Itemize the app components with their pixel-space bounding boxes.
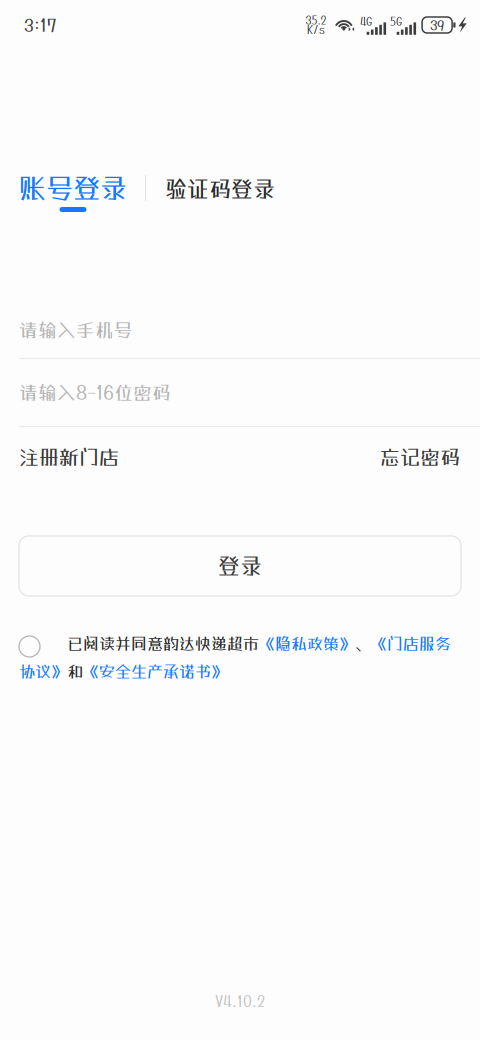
button[interactable]: 已阅读并同意韵达快递超市《隐私政策》、《门店服务协议》和《安全生产承诺书》: [19, 634, 460, 681]
staticText: 35.2: [306, 14, 327, 26]
button[interactable]: 登录: [19, 536, 461, 596]
staticText: 已阅读并同意韵达快递超市《隐私政策》、《门店服务协议》和《安全生产承诺书》: [19, 634, 451, 681]
staticText: 请输入手机号: [19, 319, 133, 341]
staticText: 5G: [390, 15, 402, 28]
staticText: 4G: [360, 15, 372, 28]
staticText: V4.10.2: [215, 993, 265, 1010]
button[interactable]: 验证码登录: [165, 175, 275, 212]
staticText: K/s: [307, 23, 325, 36]
staticText: 登录: [218, 553, 262, 579]
button[interactable]: 同意用户协议: [19, 636, 40, 657]
button[interactable]: 账号登录: [19, 173, 127, 212]
staticText: 账号登录: [19, 172, 127, 204]
staticText: 39: [430, 17, 444, 33]
staticText: 请输入8-16位密码: [19, 381, 171, 403]
staticText: 忘记密码: [380, 445, 460, 469]
staticText: 3:17: [24, 15, 57, 35]
staticText: 注册新门店: [19, 445, 119, 469]
button[interactable]: 忘记密码: [380, 445, 460, 469]
button[interactable]: 注册新门店: [19, 445, 119, 469]
staticText: 验证码登录: [165, 176, 275, 202]
